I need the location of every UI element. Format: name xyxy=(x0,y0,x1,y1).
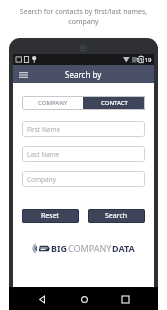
staticText: First Name xyxy=(27,125,61,134)
button[interactable]: First Name xyxy=(22,121,145,137)
staticText: 11:19 xyxy=(136,56,152,64)
staticText: DATA xyxy=(112,242,135,254)
staticText: COMPANY xyxy=(68,242,112,254)
button[interactable]: Reset xyxy=(22,209,79,223)
button[interactable]: CONTACT xyxy=(83,96,145,110)
button[interactable]: Open navigation menu xyxy=(16,67,30,81)
staticText: CONTACT xyxy=(101,99,128,107)
button[interactable]: Search xyxy=(88,209,145,223)
staticText: BIG xyxy=(51,242,68,254)
staticText: Company xyxy=(27,175,57,184)
staticText: COMPANY xyxy=(38,99,68,107)
staticText: Last Name xyxy=(27,150,60,159)
button[interactable]: Last Name xyxy=(22,146,145,162)
button[interactable]: Recent apps xyxy=(116,290,134,308)
button[interactable]: Back xyxy=(33,290,51,308)
staticText: Search for contacts by first/last names,… xyxy=(0,7,167,26)
staticText: Reset xyxy=(41,211,60,221)
staticText: Search by xyxy=(65,69,102,80)
staticText: Search xyxy=(105,211,128,221)
button[interactable]: Company xyxy=(22,171,145,187)
button[interactable]: Home xyxy=(75,290,93,308)
button[interactable]: COMPANY xyxy=(22,96,83,110)
